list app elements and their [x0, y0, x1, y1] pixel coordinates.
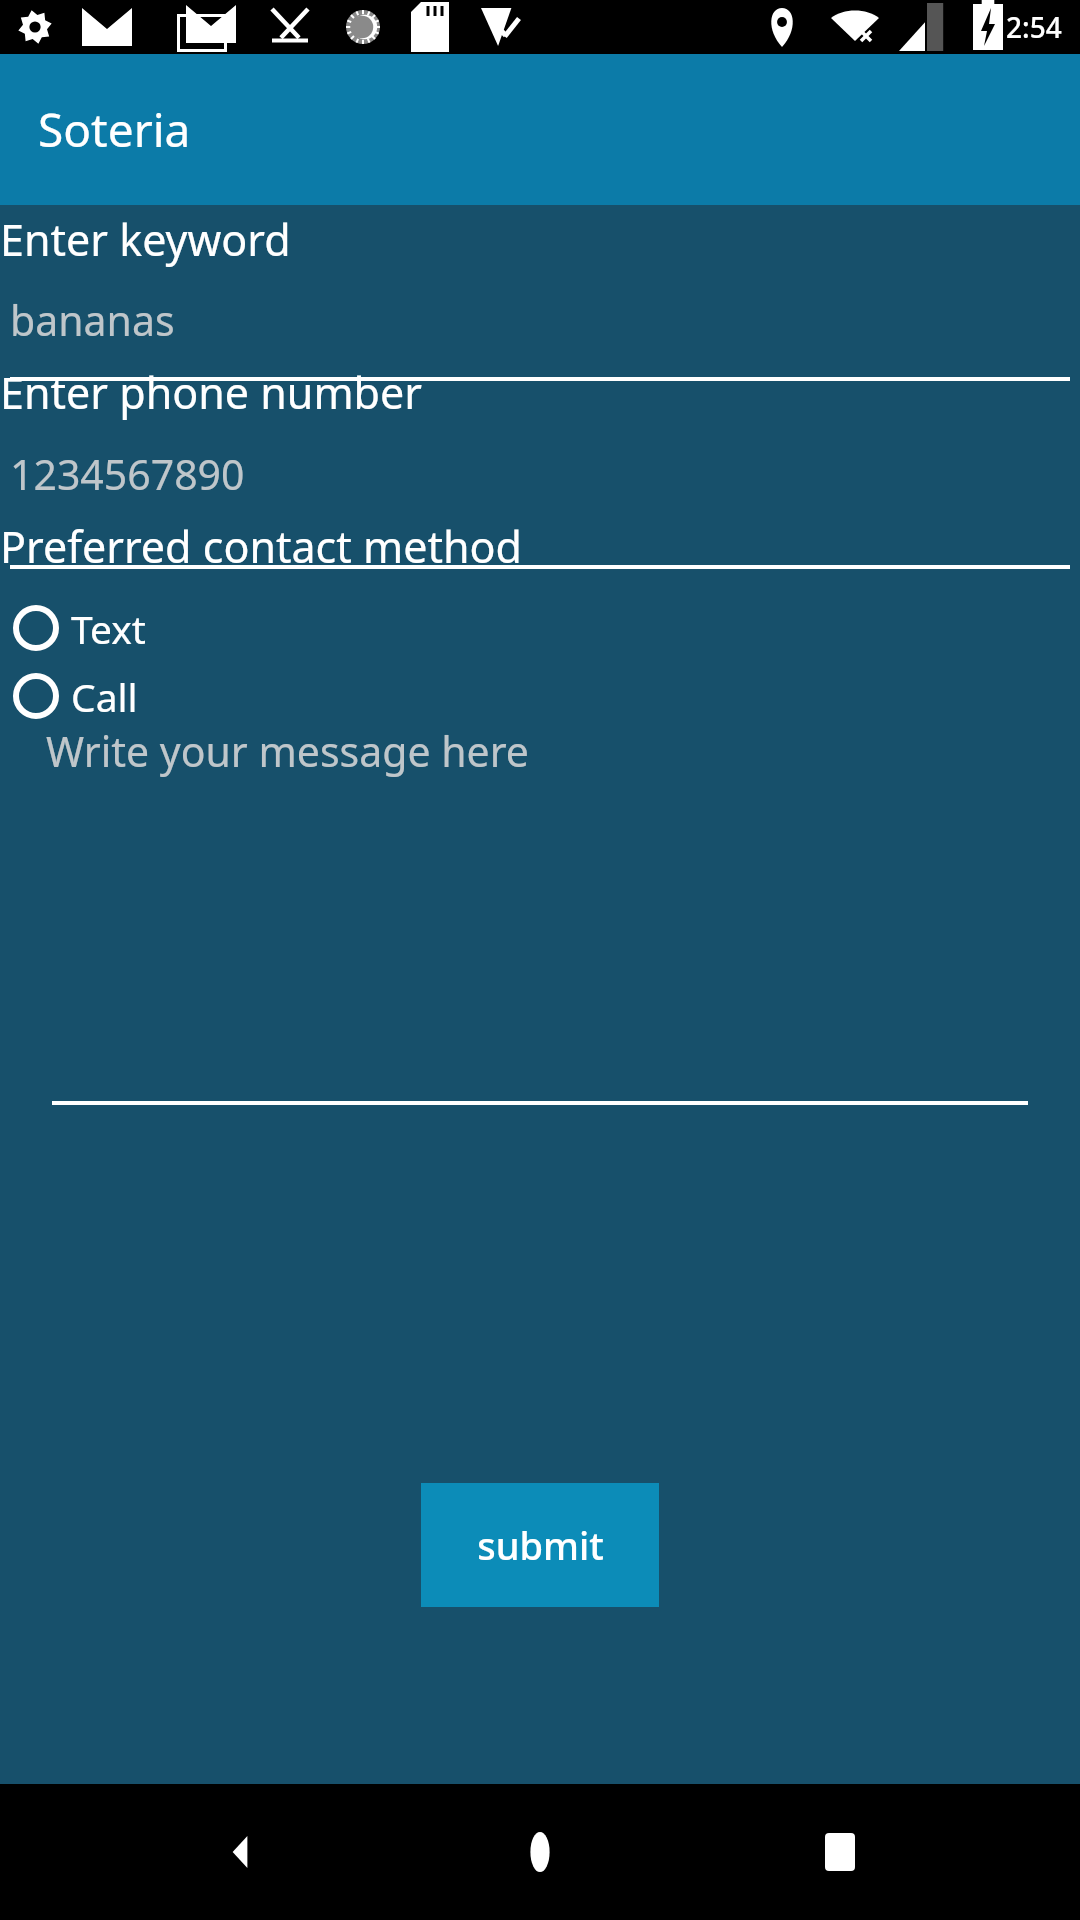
staticText: bananas [10, 292, 175, 348]
staticText: Call [71, 670, 138, 723]
button[interactable]: Back [180, 1792, 300, 1912]
staticText: submit [477, 1519, 604, 1571]
staticText: Soteria [38, 98, 191, 161]
button[interactable]: Text [0, 594, 1080, 662]
staticText: Enter keyword [0, 210, 291, 269]
staticText: Write your message here [46, 723, 529, 779]
button[interactable]: Call [0, 662, 1080, 730]
staticText: Preferred contact method [0, 517, 522, 576]
staticText: Text [71, 602, 146, 655]
button[interactable]: Home [480, 1792, 600, 1912]
staticText: Enter phone number [0, 363, 423, 422]
staticText: 1234567890 [10, 446, 245, 502]
button[interactable]: Recent apps [780, 1792, 900, 1912]
button[interactable]: submit [421, 1483, 659, 1607]
staticText: 2:54 [1006, 8, 1062, 46]
